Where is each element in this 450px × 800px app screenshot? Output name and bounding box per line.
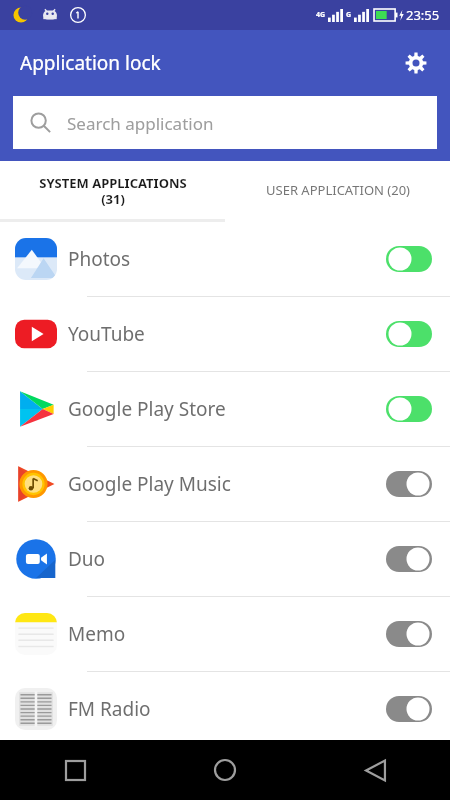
button[interactable]: Settings xyxy=(396,43,436,83)
staticText: YouTube xyxy=(68,321,145,347)
button[interactable]: Lock off xyxy=(386,544,432,574)
staticText: 23:55 xyxy=(406,6,440,24)
staticText: Photos xyxy=(68,246,131,272)
staticText: Application lock xyxy=(20,50,161,76)
button[interactable]: Recents xyxy=(0,740,150,800)
button[interactable]: Lock on xyxy=(386,319,432,349)
button[interactable]: Lock off xyxy=(386,619,432,649)
staticText: G xyxy=(346,10,352,20)
button[interactable]: Lock on xyxy=(386,244,432,274)
staticText: Google Play Music xyxy=(68,471,231,497)
staticText: Google Play Store xyxy=(68,396,226,422)
button[interactable]: Photos xyxy=(0,222,450,296)
staticText: Memo xyxy=(68,621,126,647)
button[interactable]: Google Play Music xyxy=(0,447,450,521)
button[interactable]: Lock on xyxy=(386,394,432,424)
button[interactable]: USER APPLICATION (20) xyxy=(225,161,450,219)
button[interactable]: Lock off xyxy=(386,694,432,724)
staticText: SYSTEM APPLICATIONS (31) xyxy=(39,174,187,207)
button[interactable]: YouTube xyxy=(0,297,450,371)
staticText: Duo xyxy=(68,546,106,572)
button[interactable]: FM Radio xyxy=(0,672,450,746)
button[interactable]: Back xyxy=(300,740,450,800)
button[interactable]: Memo xyxy=(0,597,450,671)
button[interactable]: Google Play Store xyxy=(0,372,450,446)
button[interactable]: Lock off xyxy=(386,469,432,499)
staticText: Search application xyxy=(67,112,214,135)
staticText: USER APPLICATION (20) xyxy=(266,181,410,199)
staticText: FM Radio xyxy=(68,696,151,722)
button[interactable]: SYSTEM APPLICATIONS (31) xyxy=(0,161,225,219)
staticText: 4G xyxy=(316,10,326,20)
button[interactable]: Search application xyxy=(13,96,437,149)
button[interactable]: Duo xyxy=(0,522,450,596)
button[interactable]: Home xyxy=(150,740,300,800)
